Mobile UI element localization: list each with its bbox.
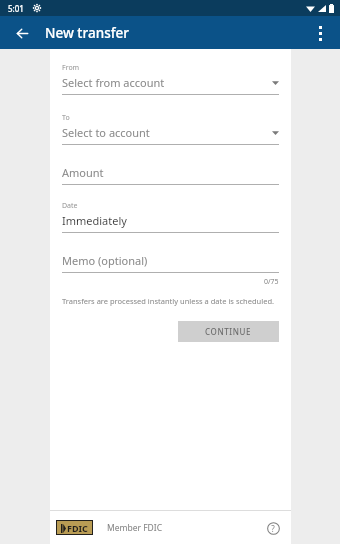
staticText: Select to account <box>62 125 272 140</box>
button[interactable]: Immediately <box>50 213 291 233</box>
staticText: New transfer <box>45 24 129 42</box>
button[interactable]: More options <box>305 18 335 48</box>
staticText: Memo (optional) <box>62 253 148 268</box>
staticText: Member FDIC <box>107 522 263 534</box>
staticText: To <box>62 113 70 123</box>
staticText: ? <box>271 523 275 534</box>
button[interactable]: CONTINUE <box>178 321 279 342</box>
button[interactable]: Help <box>263 518 283 538</box>
staticText: From <box>62 63 80 73</box>
button[interactable]: Amount <box>50 165 291 185</box>
staticText: 0/75 <box>264 277 279 287</box>
button[interactable]: Select to account <box>50 125 291 145</box>
staticText: 5:01 <box>8 3 24 14</box>
staticText: Date <box>62 201 78 211</box>
staticText: Immediately <box>62 213 127 228</box>
button[interactable]: Memo (optional) <box>50 253 291 273</box>
staticText: FDIC <box>67 522 88 534</box>
staticText: Select from account <box>62 75 272 90</box>
staticText: Transfers are processed instantly unless… <box>62 296 275 306</box>
staticText: CONTINUE <box>205 326 252 337</box>
button[interactable]: Select from account <box>50 75 291 95</box>
button[interactable]: Back <box>7 18 37 48</box>
staticText: Amount <box>62 165 104 180</box>
